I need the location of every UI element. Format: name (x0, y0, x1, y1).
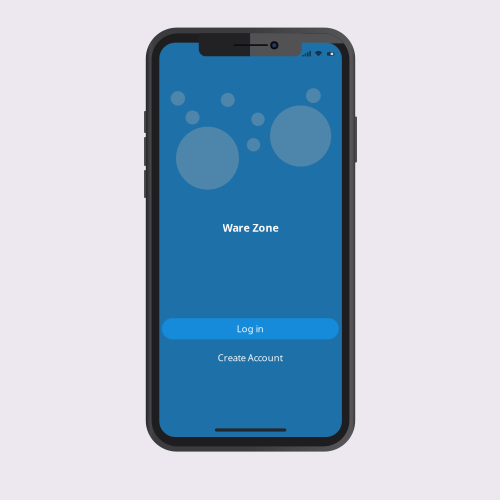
button[interactable]: Log in (162, 318, 339, 339)
staticText: Create Account (218, 351, 283, 364)
button[interactable]: Create Account (162, 347, 339, 368)
staticText: Ware Zone (223, 220, 279, 235)
staticText: Log in (237, 322, 264, 335)
